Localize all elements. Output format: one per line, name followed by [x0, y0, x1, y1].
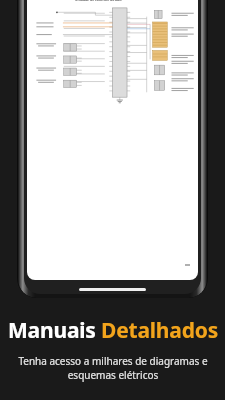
button[interactable]: Acura S-ZL 2.0 16V (MPI 140cv TD 4x4 (20…: [27, 0, 198, 280]
staticText: Tenha acesso a milhares de diagramas e e…: [18, 354, 208, 382]
staticText: Unidade de controle do ABS: [75, 0, 198, 2]
staticText: Manuais Detalhados: [8, 316, 218, 345]
other: Home indicator: [79, 288, 146, 291]
